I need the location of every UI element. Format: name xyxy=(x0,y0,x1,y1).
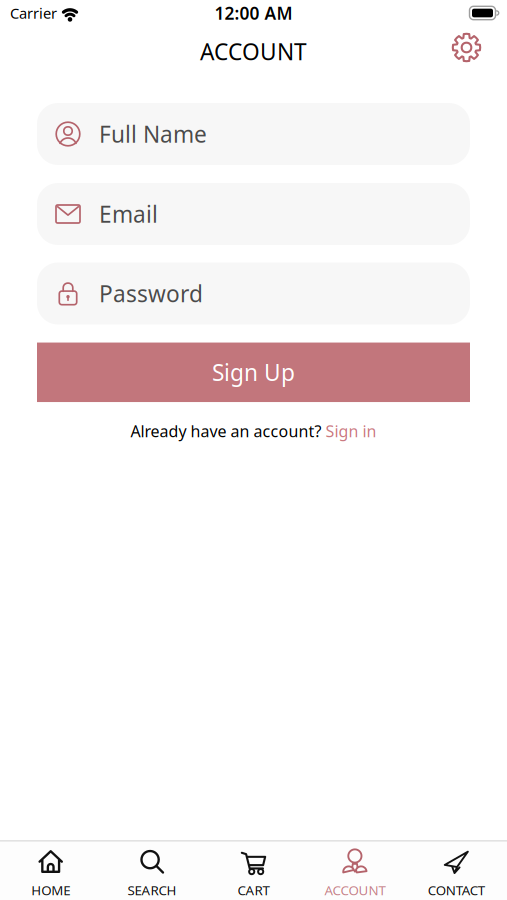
button[interactable]: HOME xyxy=(4,849,98,897)
staticText: Sign Up xyxy=(212,357,295,387)
staticText: SEARCH xyxy=(128,881,177,899)
button[interactable]: Email xyxy=(37,183,470,245)
button[interactable]: Full Name xyxy=(37,103,470,165)
staticText: CONTACT xyxy=(428,881,485,899)
staticText: Already have an account? xyxy=(130,420,321,442)
staticText: Sign in xyxy=(325,420,376,442)
staticText: ACCOUNT xyxy=(200,36,307,66)
button[interactable]: SEARCH xyxy=(105,849,199,897)
staticText: Password xyxy=(99,278,203,308)
button[interactable]: ACCOUNT xyxy=(308,849,402,897)
staticText: CART xyxy=(237,881,269,899)
staticText: Email xyxy=(99,199,158,229)
staticText: Carrier xyxy=(10,3,57,23)
button[interactable]: Sign Up xyxy=(37,343,470,402)
staticText: Full Name xyxy=(99,119,207,149)
staticText: ACCOUNT xyxy=(324,881,385,899)
button[interactable]: CONTACT xyxy=(409,849,503,897)
button[interactable]: CART xyxy=(206,849,300,897)
button[interactable]: Sign in xyxy=(325,420,376,442)
staticText: 12:00 AM xyxy=(214,1,292,24)
button[interactable]: Settings xyxy=(451,32,481,62)
button[interactable]: Password xyxy=(37,262,470,324)
staticText: HOME xyxy=(31,881,70,899)
